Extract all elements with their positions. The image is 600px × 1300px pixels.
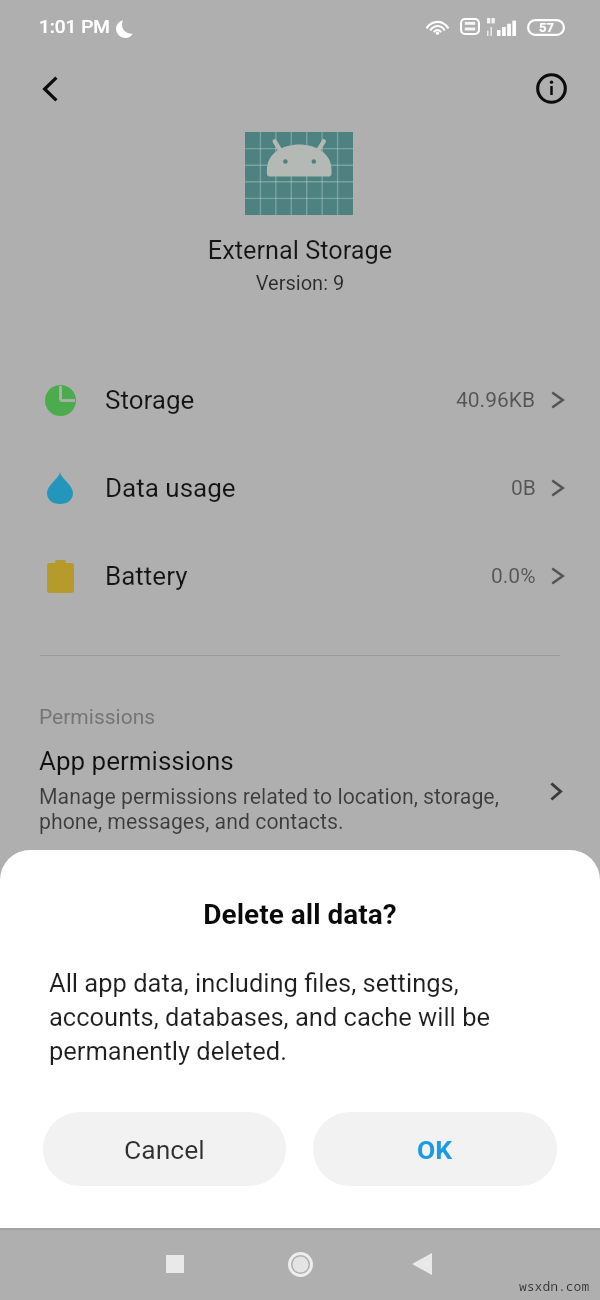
- staticText: 0B: [511, 476, 536, 501]
- button[interactable]: OK: [313, 1112, 557, 1186]
- staticText: External Storage: [0, 236, 600, 266]
- button[interactable]: Data usage: [0, 458, 600, 518]
- button[interactable]: Cancel: [43, 1112, 286, 1186]
- staticText: All app data, including files, settings,…: [49, 968, 511, 1066]
- staticText: Cancel: [124, 1134, 205, 1165]
- staticText: Permissions: [39, 705, 156, 730]
- staticText: Delete all data?: [0, 898, 600, 931]
- button[interactable]: App permissions: [0, 746, 600, 834]
- staticText: OK: [417, 1134, 453, 1165]
- staticText: Storage: [105, 385, 195, 415]
- staticText: 1:01 PM: [39, 15, 110, 37]
- button[interactable]: Home: [276, 1228, 324, 1300]
- staticText: 57: [539, 20, 554, 35]
- staticText: Battery: [105, 561, 188, 591]
- staticText: Version: 9: [0, 271, 600, 294]
- staticText: Manage permissions related to location, …: [39, 784, 537, 834]
- staticText: App permissions: [39, 746, 234, 776]
- button[interactable]: Storage: [0, 370, 600, 430]
- button[interactable]: Back: [25, 64, 73, 112]
- button[interactable]: Back: [398, 1228, 446, 1300]
- staticText: Data usage: [105, 473, 236, 503]
- staticText: wsxdn.com: [519, 1277, 590, 1295]
- button[interactable]: Battery: [0, 546, 600, 606]
- button[interactable]: Recents: [151, 1228, 199, 1300]
- staticText: 40.96KB: [456, 388, 536, 413]
- button[interactable]: App info: [527, 64, 575, 112]
- staticText: 0.0%: [491, 564, 536, 589]
